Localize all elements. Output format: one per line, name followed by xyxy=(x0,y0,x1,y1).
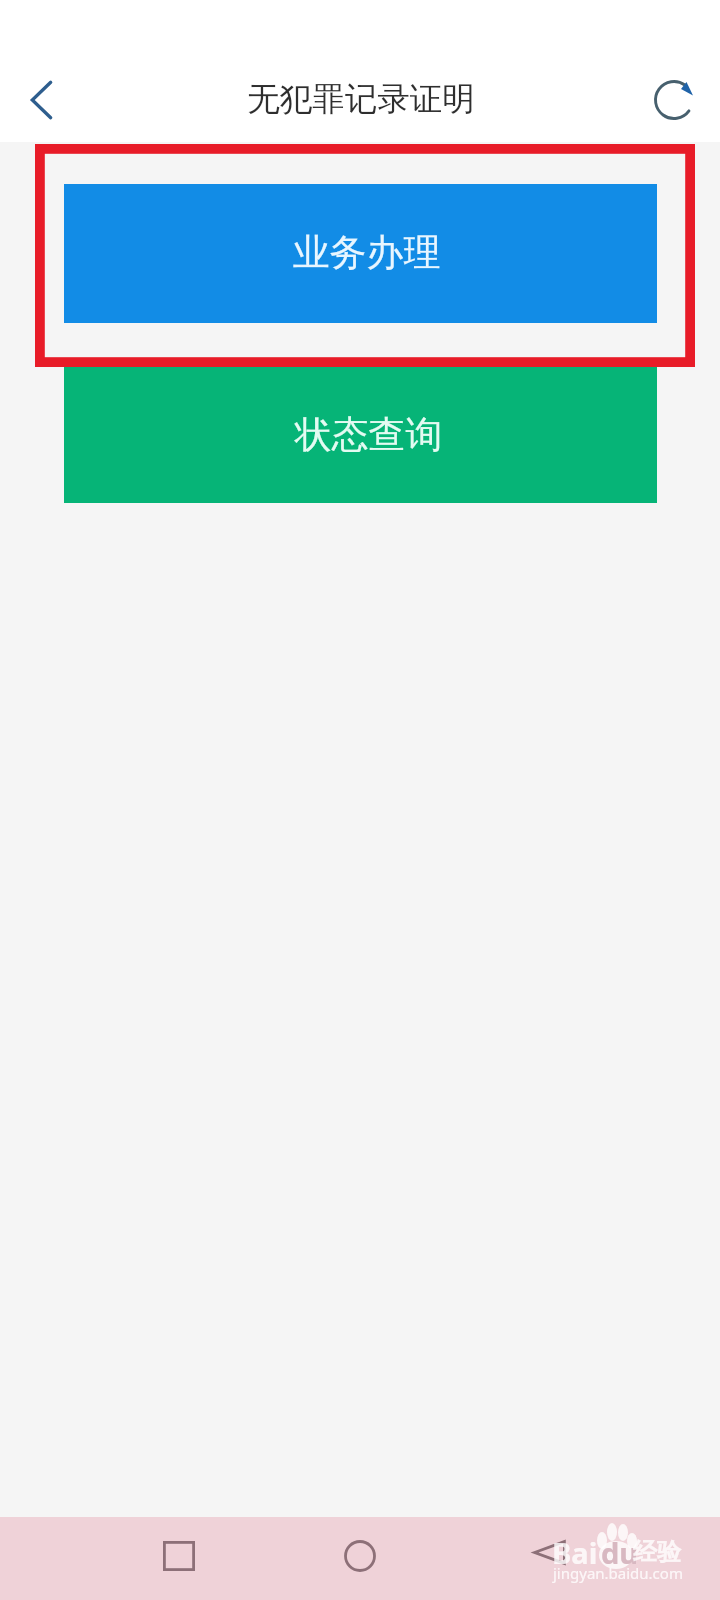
staticText: du xyxy=(601,1533,639,1572)
staticText: jingyan.baidu.com xyxy=(553,1563,683,1583)
staticText: 状态查询 xyxy=(295,412,443,458)
staticText: 业务办理 xyxy=(293,230,441,276)
button[interactable]: Home xyxy=(328,1524,392,1588)
button[interactable]: 业务办理 xyxy=(64,184,657,323)
staticText: 经验 xyxy=(633,1537,681,1567)
button[interactable]: Refresh xyxy=(644,70,704,130)
staticText: Bai xyxy=(552,1533,598,1572)
staticText: 无犯罪记录证明 xyxy=(247,79,475,120)
button[interactable]: Back xyxy=(7,57,75,142)
button[interactable]: 状态查询 xyxy=(64,367,657,503)
button[interactable]: Back xyxy=(517,1520,581,1584)
button[interactable]: Recent apps xyxy=(147,1524,211,1588)
